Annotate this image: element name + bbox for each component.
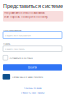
staticText: или пароль. Повторите попытку. bbox=[4, 15, 48, 19]
button[interactable]: Помощь по входу bbox=[23, 86, 41, 89]
button[interactable]: Сбросить свой пароль? bbox=[20, 91, 44, 94]
staticText: Оставаться в системе bbox=[9, 56, 32, 59]
staticText: Авторизация через Госуслуги bbox=[11, 75, 43, 78]
staticText: Сбросить свой пароль? bbox=[20, 91, 44, 94]
staticText: Пароль bbox=[3, 42, 10, 45]
button[interactable]: Оставаться в системе bbox=[3, 55, 62, 60]
staticText: Войти bbox=[28, 65, 37, 69]
staticText: Представиться системе bbox=[3, 2, 63, 10]
button[interactable]: Авторизация через Госуслуги bbox=[3, 74, 62, 80]
staticText: Неправильное имя пользователя bbox=[4, 11, 44, 14]
staticText: Помощь по входу bbox=[23, 86, 41, 89]
staticText: Введите имя пользователя bbox=[5, 34, 31, 37]
staticText: Имя пользователя bbox=[3, 29, 21, 32]
staticText: Введите свой пароль bbox=[5, 47, 25, 51]
button[interactable]: Войти bbox=[3, 64, 62, 71]
